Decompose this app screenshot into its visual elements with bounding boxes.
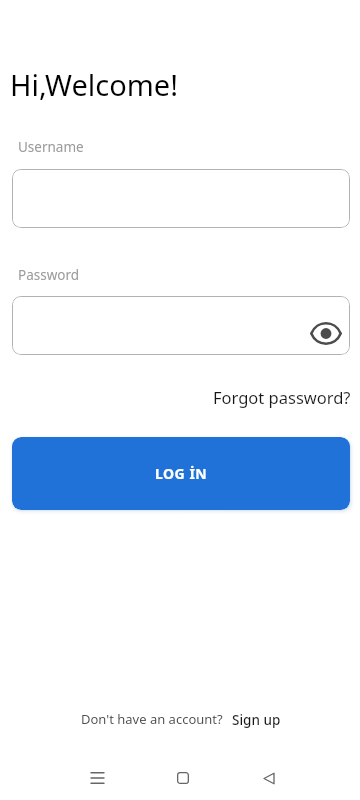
- button[interactable]: Show password: [306, 316, 346, 350]
- button[interactable]: Sign up: [232, 711, 281, 729]
- button[interactable]: Forgot password?: [213, 386, 351, 408]
- button[interactable]: Home: [170, 762, 196, 794]
- button[interactable]: Recents: [84, 762, 110, 794]
- button[interactable]: LOG İN: [12, 437, 350, 510]
- button[interactable]: Username field: [12, 169, 350, 228]
- staticText: Don't have an account?: [81, 710, 223, 728]
- staticText: LOG İN: [155, 464, 208, 483]
- staticText: Password: [18, 266, 80, 284]
- button[interactable]: Back: [256, 762, 282, 794]
- button[interactable]: Password field: [12, 296, 350, 355]
- staticText: Username: [18, 138, 84, 156]
- staticText: Hi,Welcome!: [10, 65, 178, 104]
